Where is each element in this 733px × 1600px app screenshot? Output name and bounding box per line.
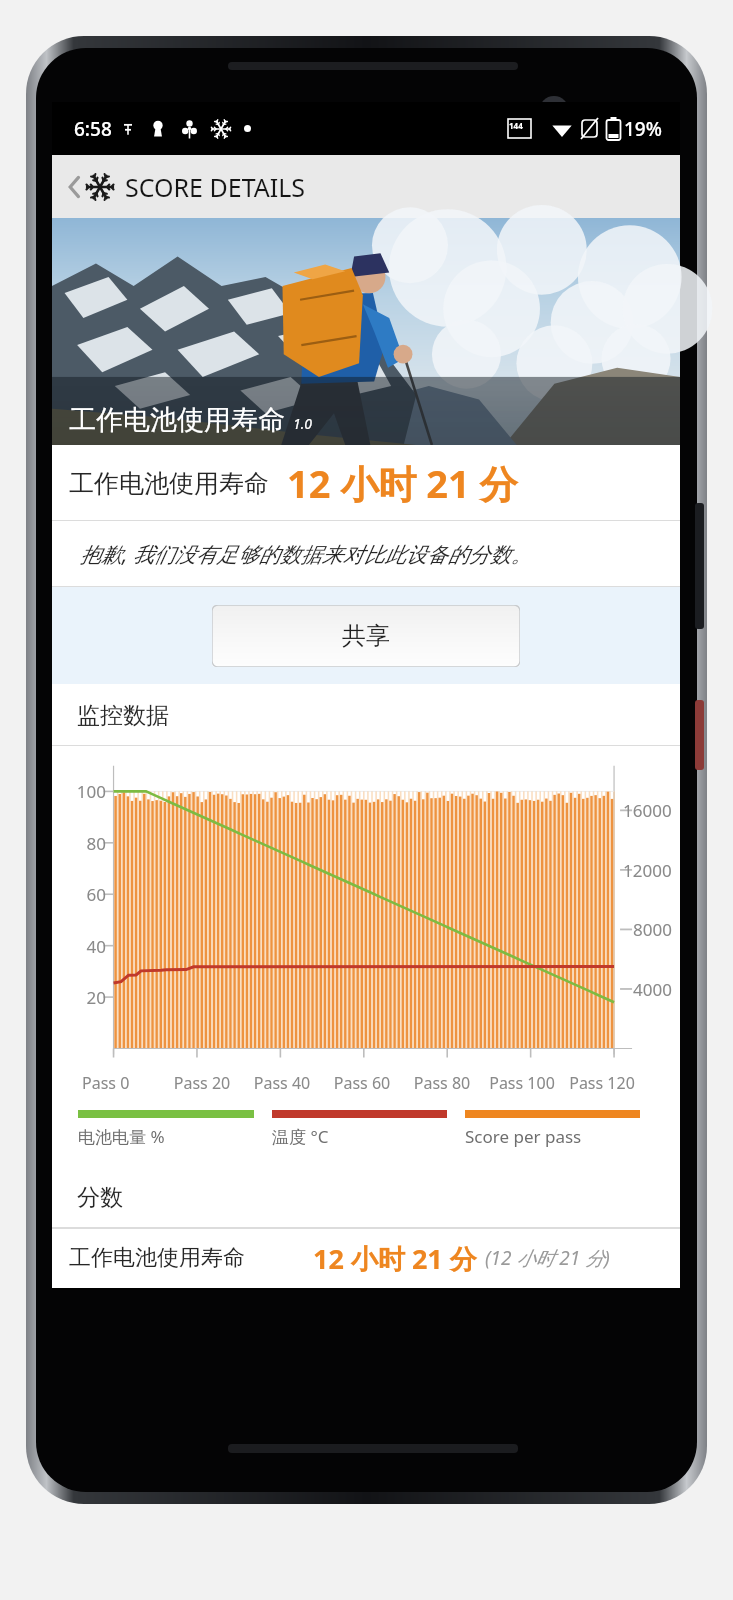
staticText: 监控数据 xyxy=(77,701,169,730)
staticText: 工作电池使用寿命 xyxy=(69,1244,245,1272)
staticText: 6:58 xyxy=(74,116,112,142)
button[interactable]: SCORE DETAILS xyxy=(52,155,680,218)
staticText: 16000 xyxy=(623,799,672,822)
staticText: Pass 80 xyxy=(402,1072,482,1094)
staticText: 20 xyxy=(58,986,106,1009)
staticText: 8000 xyxy=(633,918,672,941)
staticText: 抱歉, 我们没有足够的数据来对比此设备的分数。 xyxy=(80,540,532,569)
staticText: 19% xyxy=(624,116,662,142)
staticText: 80 xyxy=(58,832,106,855)
staticText: 12 小时 21 分 xyxy=(287,457,518,509)
staticText: 分数 xyxy=(77,1183,123,1212)
staticText: 工作电池使用寿命 xyxy=(69,468,269,499)
staticText: 4000 xyxy=(633,978,672,1001)
staticText: Pass 40 xyxy=(242,1072,322,1094)
staticText: 温度 °C xyxy=(272,1125,329,1148)
staticText: SCORE DETAILS xyxy=(125,170,306,204)
staticText: Pass 0 xyxy=(82,1072,162,1094)
staticText: 40 xyxy=(58,935,106,958)
button[interactable]: 共享 xyxy=(212,605,520,667)
staticText: Pass 20 xyxy=(162,1072,242,1094)
staticText: (12 小时 21 分) xyxy=(485,1245,610,1271)
staticText: 共享 xyxy=(342,621,390,651)
staticText: 60 xyxy=(58,883,106,906)
staticText: 1.0 xyxy=(293,414,313,433)
staticText: 12000 xyxy=(623,859,672,882)
staticText: 工作电池使用寿命 xyxy=(69,403,285,437)
staticText: 电池电量 % xyxy=(78,1125,165,1148)
staticText: Pass 60 xyxy=(322,1072,402,1094)
staticText: 144 xyxy=(509,120,523,131)
staticText: Pass 120 xyxy=(562,1072,642,1094)
staticText: Pass 100 xyxy=(482,1072,562,1094)
staticText: 12 小时 21 分 xyxy=(313,1240,477,1277)
staticText: 100 xyxy=(58,780,106,803)
staticText: Score per pass xyxy=(465,1125,582,1148)
